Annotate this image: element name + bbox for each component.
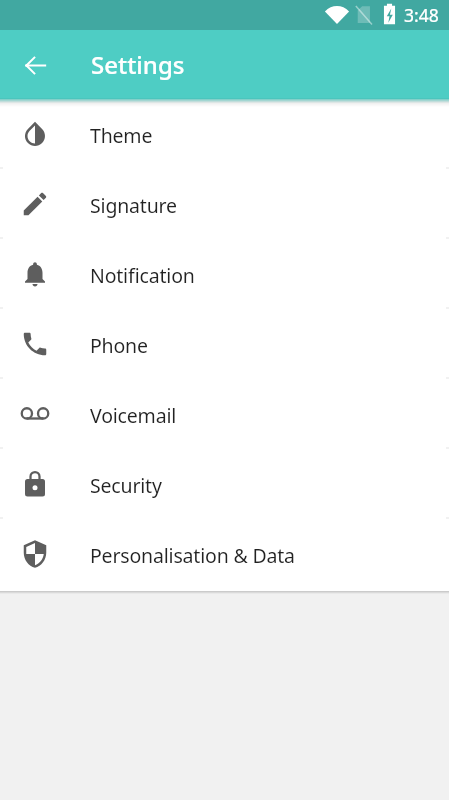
- staticText: Voicemail: [90, 402, 177, 429]
- staticText: Personalisation & Data: [90, 542, 295, 569]
- staticText: Phone: [90, 332, 148, 359]
- button[interactable]: Voicemail: [0, 379, 449, 449]
- staticText: 3:48: [404, 3, 439, 27]
- staticText: Notification: [90, 262, 195, 289]
- button[interactable]: Security: [0, 449, 449, 519]
- staticText: Theme: [90, 122, 153, 149]
- button[interactable]: Notification: [0, 239, 449, 309]
- button[interactable]: Phone: [0, 309, 449, 379]
- button[interactable]: Personalisation & Data: [0, 519, 449, 589]
- button[interactable]: Signature: [0, 169, 449, 239]
- staticText: Settings: [91, 48, 185, 81]
- button[interactable]: Back: [11, 41, 59, 89]
- staticText: Security: [90, 472, 162, 499]
- staticText: Signature: [90, 192, 177, 219]
- button[interactable]: Theme: [0, 99, 449, 169]
